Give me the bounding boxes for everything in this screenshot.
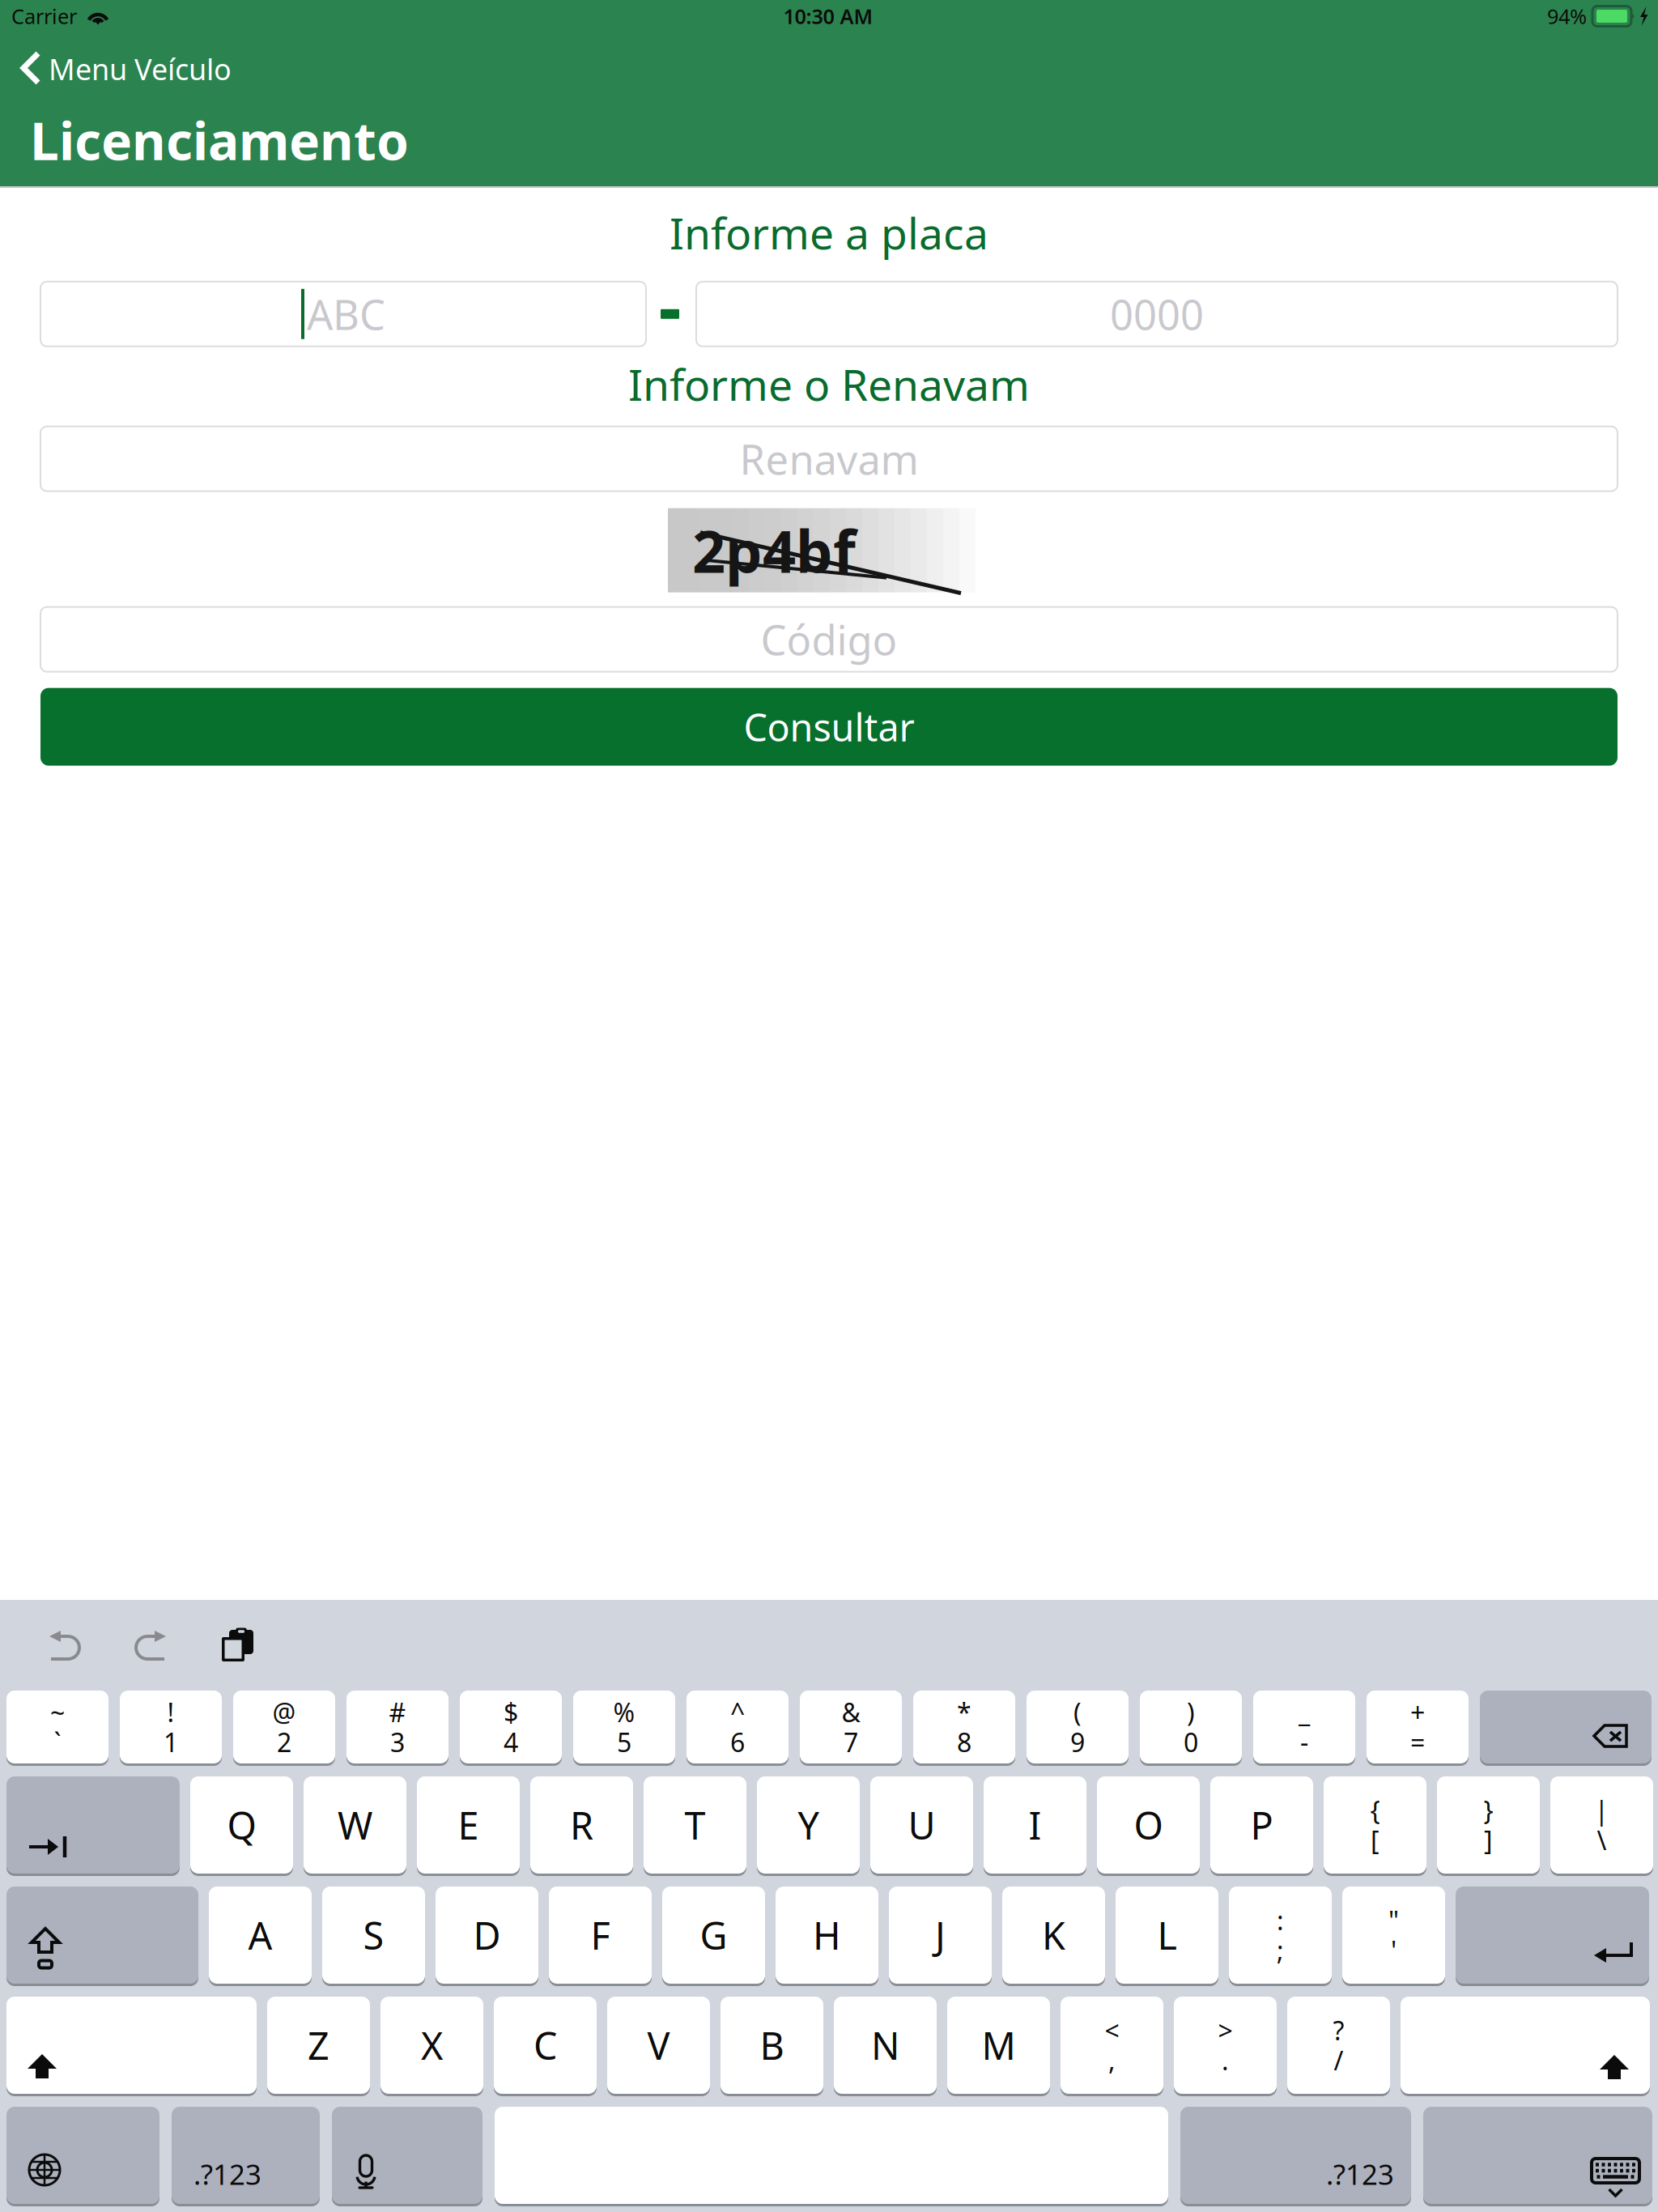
staticText: ABC [307,287,385,341]
button[interactable]: .?123 [1180,2107,1411,2204]
button[interactable]: Return [1456,1887,1649,1984]
staticText: ~ [50,1695,65,1729]
button[interactable]: C [494,1997,597,2094]
button[interactable]: } [1437,1776,1540,1874]
staticText: ( [1073,1695,1082,1729]
button[interactable]: Q [190,1776,293,1874]
button[interactable]: > [1174,1997,1277,2094]
staticText: 0 [1184,1725,1198,1759]
button[interactable]: L [1116,1887,1218,1984]
button[interactable]: F [549,1887,652,1984]
button[interactable]: ABC [40,282,646,346]
button[interactable]: V [607,1997,710,2094]
staticText: H [813,1910,841,1960]
button[interactable]: D [436,1887,538,1984]
button[interactable]: & [800,1691,902,1763]
button[interactable]: 0000 [696,282,1618,346]
button[interactable]: " [1342,1887,1445,1984]
button[interactable]: S [322,1887,425,1984]
button[interactable]: % [573,1691,675,1763]
staticText: " [1388,1903,1399,1937]
button[interactable]: Next keyboard [6,2107,159,2204]
staticText: 6 [730,1725,745,1759]
staticText: % [613,1695,635,1729]
button[interactable]: _ [1253,1691,1355,1763]
button[interactable]: Y [757,1776,860,1874]
button[interactable]: { [1324,1776,1426,1874]
button[interactable]: # [346,1691,449,1763]
button[interactable]: ? [1287,1997,1390,2094]
staticText: G [700,1910,727,1960]
staticText: Consultar [744,702,914,752]
staticText: S [363,1910,384,1960]
staticText: Licenciamento [30,106,409,174]
button[interactable]: J [889,1887,992,1984]
button[interactable]: Paste [223,1628,253,1662]
button[interactable]: Código [40,607,1618,672]
button[interactable]: Redo [134,1629,168,1661]
staticText: 94% [1547,3,1587,30]
button[interactable]: ~ [6,1691,108,1763]
button[interactable]: .?123 [172,2107,320,2204]
button[interactable]: U [870,1776,973,1874]
staticText: ' [1391,1933,1397,1967]
button[interactable]: @ [233,1691,335,1763]
button[interactable]: B [721,1997,823,2094]
button[interactable]: ) [1140,1691,1242,1763]
button[interactable]: A [209,1887,312,1984]
button[interactable]: | [1550,1776,1653,1874]
button[interactable]: : [1229,1887,1332,1984]
staticText: 9 [1070,1725,1085,1759]
button[interactable]: K [1002,1887,1105,1984]
button[interactable]: Menu Veículo [0,48,1658,90]
button[interactable]: Z [267,1997,370,2094]
button[interactable]: E [417,1776,520,1874]
staticText: 0000 [1110,287,1204,341]
button[interactable]: Consultar [40,688,1618,766]
staticText: } [1484,1793,1493,1827]
button[interactable]: P [1210,1776,1313,1874]
button[interactable]: ^ [687,1691,789,1763]
staticText: Código [761,612,897,667]
button[interactable]: Undo [48,1629,82,1661]
staticText: 2p4bf [692,512,856,589]
button[interactable]: ! [120,1691,222,1763]
button[interactable]: ( [1027,1691,1129,1763]
staticText: : [1277,1903,1284,1937]
staticText: T [684,1800,706,1850]
button[interactable]: $ [460,1691,562,1763]
button[interactable]: Dictation [332,2107,483,2204]
staticText: J [935,1910,946,1960]
staticText: F [591,1910,610,1960]
button[interactable]: G [662,1887,765,1984]
button[interactable]: T [644,1776,746,1874]
button[interactable]: Tab [6,1776,180,1874]
button[interactable]: H [776,1887,878,1984]
button[interactable]: Hide keyboard [1423,2107,1652,2204]
staticText: ; [1277,1933,1284,1967]
button[interactable]: R [530,1776,633,1874]
staticText: V [647,2020,670,2070]
staticText: C [534,2020,557,2070]
staticText: X [421,2020,443,2070]
button[interactable]: M [947,1997,1050,2094]
button[interactable]: + [1367,1691,1469,1763]
staticText: { [1370,1793,1380,1827]
button[interactable]: * [913,1691,1015,1763]
button[interactable]: Renavam [40,426,1618,491]
staticText: .?123 [1326,2155,1394,2193]
button[interactable]: < [1061,1997,1163,2094]
button[interactable]: I [984,1776,1086,1874]
button[interactable]: Caps Lock [6,1887,198,1984]
button[interactable]: Shift [6,1997,257,2094]
staticText: A [248,1910,272,1960]
staticText: ) [1187,1695,1195,1729]
button[interactable]: W [304,1776,406,1874]
button[interactable]: O [1097,1776,1200,1874]
button[interactable]: Delete [1480,1691,1652,1763]
button[interactable]: Shift [1401,1997,1650,2094]
button[interactable]: X [380,1997,483,2094]
button[interactable]: N [834,1997,937,2094]
staticText: & [842,1695,860,1729]
